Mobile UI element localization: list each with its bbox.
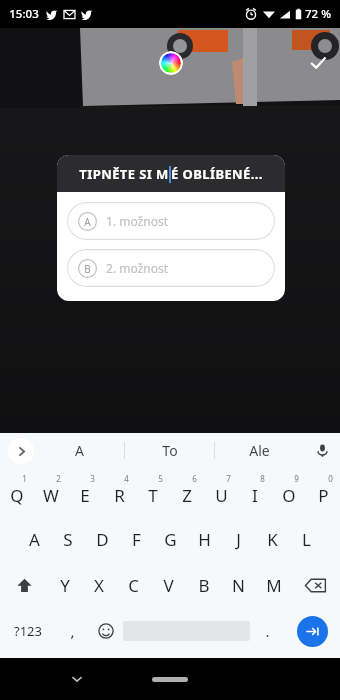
staticText: I [252, 484, 258, 507]
button[interactable]: A [34, 433, 124, 468]
button[interactable]: 6 [170, 468, 204, 516]
button[interactable]: G [153, 516, 187, 562]
staticText: W [43, 484, 59, 507]
button[interactable]: K [255, 516, 289, 562]
button[interactable]: Color picker [159, 51, 183, 75]
staticText: B [84, 262, 91, 276]
staticText: ?123 [14, 622, 42, 640]
staticText: S [63, 528, 73, 551]
button[interactable]: F [119, 516, 153, 562]
button[interactable]: 1 [0, 468, 34, 516]
button[interactable]: Y [48, 562, 82, 608]
button[interactable]: 2 [34, 468, 68, 516]
button[interactable]: Send [284, 608, 340, 654]
staticText: 6 [192, 473, 197, 484]
staticText: R [114, 484, 125, 507]
staticText: U [215, 484, 228, 507]
staticText: , [70, 621, 75, 641]
button[interactable]: D [85, 516, 119, 562]
staticText: A [84, 215, 91, 229]
button[interactable]: V [151, 562, 186, 608]
button[interactable]: X [82, 562, 116, 608]
button[interactable]: S [51, 516, 85, 562]
staticText: X [94, 574, 104, 597]
staticText: To [162, 441, 178, 460]
staticText: 1 [22, 473, 27, 484]
button[interactable]: 0 [306, 468, 340, 516]
staticText: A [75, 441, 84, 460]
staticText: 7 [226, 473, 231, 484]
staticText: J [236, 528, 241, 551]
staticText: B [198, 574, 210, 597]
button[interactable]: A [17, 516, 51, 562]
staticText: E [80, 484, 90, 507]
staticText: N [232, 574, 245, 597]
button[interactable]: 4 [102, 468, 136, 516]
staticText: F [132, 528, 141, 551]
button[interactable]: Shift [0, 562, 48, 608]
staticText: 0 [328, 473, 333, 484]
button[interactable]: Hide keyboard [62, 664, 92, 694]
staticText: O [282, 484, 296, 507]
button[interactable]: Backspace [291, 562, 340, 608]
staticText: M [266, 574, 282, 597]
staticText: 9 [294, 473, 299, 484]
staticText: L [302, 528, 311, 551]
staticText: H [198, 528, 211, 551]
button[interactable]: B [186, 562, 221, 608]
staticText: 5 [158, 473, 163, 484]
button[interactable]: H [187, 516, 221, 562]
button[interactable]: 7 [204, 468, 238, 516]
staticText: É OBLÍBENÉ... [171, 165, 263, 183]
staticText: 8 [260, 473, 265, 484]
staticText: 4 [124, 473, 129, 484]
button[interactable]: Home [152, 677, 188, 682]
button[interactable]: Emoji [89, 608, 123, 654]
staticText: 1. možnost [106, 213, 168, 229]
staticText: 3 [90, 473, 95, 484]
button[interactable]: To [125, 433, 214, 468]
staticText: TIPNĚTE SI M [79, 165, 169, 183]
button[interactable]: 8 [238, 468, 272, 516]
button[interactable]: Expand toolbar [8, 438, 34, 464]
staticText: 2. možnost [106, 260, 168, 276]
button[interactable]: N [221, 562, 256, 608]
button[interactable]: 9 [272, 468, 306, 516]
staticText: C [128, 574, 139, 597]
staticText: Y [60, 574, 70, 597]
staticText: Q [10, 484, 24, 507]
button[interactable]: J [221, 516, 255, 562]
staticText: Ale [249, 441, 270, 460]
staticText: 72 % [305, 6, 331, 22]
staticText: G [164, 528, 177, 551]
button[interactable]: Done [303, 48, 333, 78]
staticText: . [265, 621, 270, 641]
staticText: Z [182, 484, 192, 507]
staticText: P [318, 484, 329, 507]
staticText: A [29, 528, 40, 551]
button[interactable]: B [67, 249, 275, 287]
staticText: 2 [56, 473, 61, 484]
button[interactable]: M [256, 562, 291, 608]
button[interactable]: 3 [68, 468, 102, 516]
staticText: 15:03 [9, 6, 39, 22]
button[interactable]: Voice input [304, 433, 340, 468]
button[interactable]: A [67, 202, 275, 240]
button[interactable]: Ale [215, 433, 304, 468]
staticText: K [267, 528, 278, 551]
button[interactable]: 5 [136, 468, 170, 516]
button[interactable]: . [250, 608, 284, 654]
button[interactable]: ?123 [0, 608, 55, 654]
button[interactable]: C [116, 562, 151, 608]
button[interactable]: , [55, 608, 89, 654]
button[interactable]: L [289, 516, 323, 562]
staticText: D [96, 528, 109, 551]
staticText: V [163, 574, 174, 597]
button[interactable]: TIPNĚTE SI M [57, 155, 285, 192]
staticText: T [148, 484, 158, 507]
